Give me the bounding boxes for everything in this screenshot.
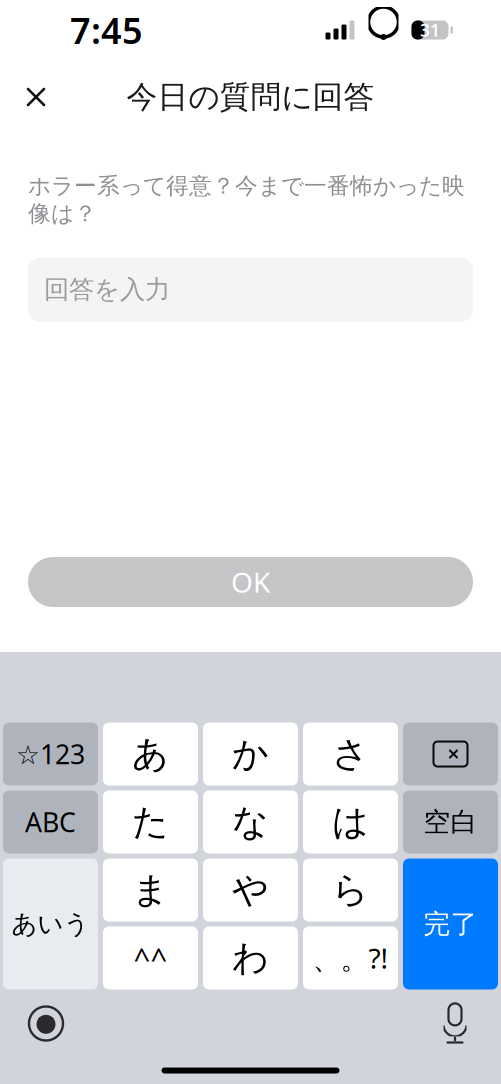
staticText: OK (231, 563, 270, 601)
button[interactable]: ら (303, 858, 398, 921)
staticText: あいう (11, 908, 89, 939)
staticText: 7:45 (70, 6, 143, 54)
button[interactable]: か (203, 722, 298, 785)
button[interactable]: ☆123 (3, 722, 98, 785)
staticText: 今日の質問に回答 (126, 78, 374, 116)
button[interactable]: 音声入力 (427, 995, 483, 1051)
staticText: ^^ (133, 938, 167, 977)
button[interactable]: あいう (3, 858, 98, 989)
staticText: ホラー系って得意？今まで一番怖かった映像は？ (28, 172, 465, 228)
staticText: や (232, 868, 269, 912)
staticText: か (232, 732, 269, 776)
button[interactable]: 完了 (403, 858, 498, 989)
staticText: な (232, 800, 269, 844)
button[interactable]: や (203, 858, 298, 921)
staticText: ABC (25, 804, 76, 840)
staticText: 、。?! (312, 939, 388, 977)
staticText: わ (232, 936, 269, 980)
staticText: 回答を入力 (44, 274, 170, 305)
button[interactable]: た (103, 790, 198, 853)
button[interactable]: ま (103, 858, 198, 921)
button[interactable]: な (203, 790, 298, 853)
staticText: は (332, 800, 369, 844)
button[interactable]: 絵文字 (18, 995, 74, 1051)
button[interactable]: あ (103, 722, 198, 785)
button[interactable]: 閉じる (8, 69, 64, 125)
staticText: 31 (420, 18, 440, 41)
button[interactable]: OK (28, 557, 473, 607)
staticText: ☆123 (16, 736, 85, 772)
button[interactable]: 削除 (403, 722, 498, 785)
button[interactable]: さ (303, 722, 398, 785)
staticText: さ (332, 732, 369, 776)
staticText: ら (332, 868, 369, 912)
button[interactable]: 空白 (403, 790, 498, 853)
button[interactable]: は (303, 790, 398, 853)
staticText: 完了 (423, 908, 477, 940)
staticText: た (132, 800, 169, 844)
staticText: ま (132, 868, 169, 912)
button[interactable]: 、。?! (303, 926, 398, 989)
staticText: あ (132, 732, 169, 776)
button[interactable]: わ (203, 926, 298, 989)
button[interactable]: ^^ (103, 926, 198, 989)
staticText: 空白 (423, 806, 477, 838)
button[interactable]: ABC (3, 790, 98, 853)
